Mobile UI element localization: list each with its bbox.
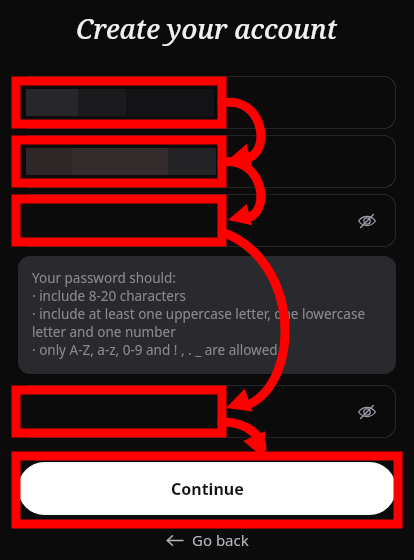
button[interactable]: Show password (18, 194, 396, 247)
staticText: Create your account (76, 10, 338, 47)
button[interactable]: Show password (354, 399, 380, 425)
button[interactable]: Continue (18, 462, 396, 515)
staticText: Continue (171, 478, 244, 500)
staticText: · include at least one uppercase letter,… (32, 305, 365, 323)
button[interactable]: Show password (354, 208, 380, 234)
button[interactable]: Show password (18, 385, 396, 438)
staticText: letter and one number (32, 323, 176, 341)
staticText: Your password should: (32, 269, 176, 287)
staticText: · only A-Z, a-z, 0-9 and ! , . _ are all… (32, 341, 278, 359)
button[interactable]: Go back (0, 526, 414, 554)
button[interactable] (18, 76, 396, 129)
staticText: · include 8-20 characters (32, 287, 186, 305)
button[interactable] (18, 135, 396, 188)
staticText: Go back (192, 530, 249, 550)
